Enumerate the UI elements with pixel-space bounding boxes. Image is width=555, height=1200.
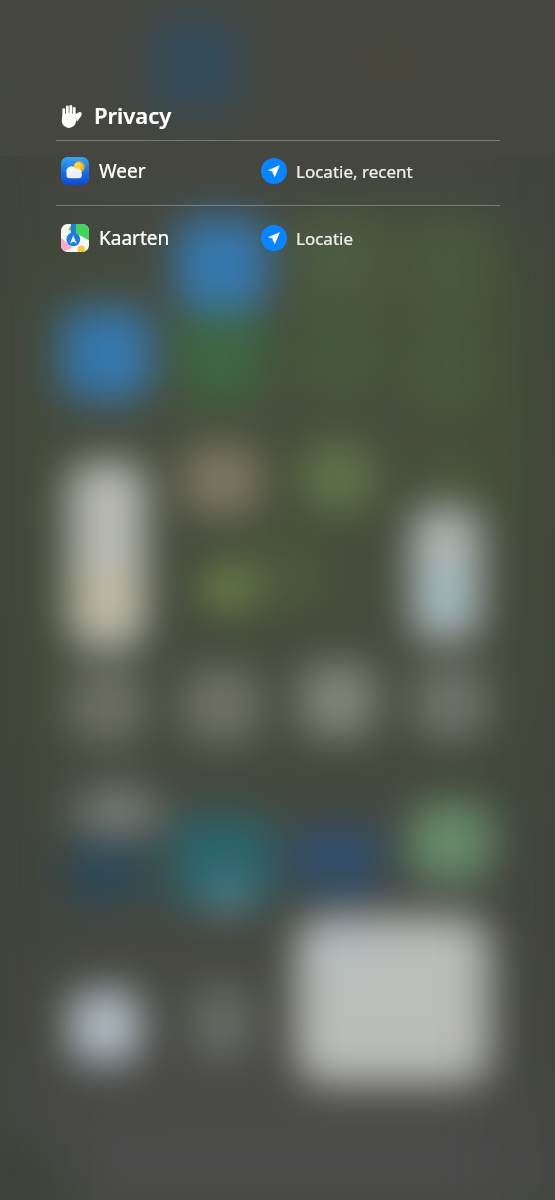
staticText: Locatie, recent [296,160,413,183]
button[interactable]: Weer [61,147,500,195]
staticText: Kaarten [99,225,170,251]
staticText: Weer [99,158,146,184]
staticText: Locatie [296,227,354,250]
button[interactable]: Privacy [56,98,172,132]
staticText: Privacy [94,100,172,130]
button[interactable]: Kaarten [61,214,500,262]
